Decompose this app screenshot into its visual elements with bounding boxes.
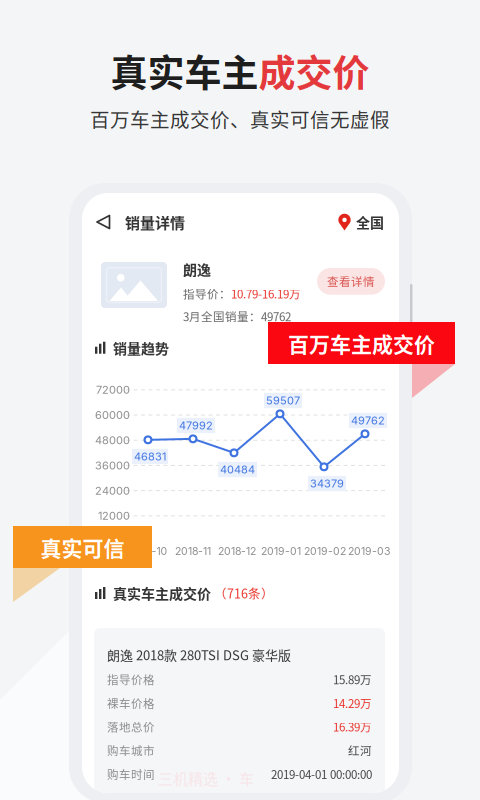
staticText: 24000 (95, 484, 130, 497)
staticText: 销量详情 (125, 211, 185, 233)
staticText: 72000 (96, 383, 130, 396)
staticText: 2018-10 (128, 545, 167, 557)
staticText: 成交价 (258, 44, 369, 98)
button[interactable]: 全国 (338, 212, 384, 232)
staticText: 2019-01 (261, 545, 301, 557)
staticText: 购车时间 (107, 765, 155, 782)
staticText: 全国 (356, 212, 384, 232)
staticText: 落地总价 (107, 718, 155, 735)
staticText: 10.79-16.19万 (231, 285, 301, 302)
staticText: 指导价： (183, 285, 231, 302)
staticText: 朗逸 (183, 259, 211, 279)
staticText: 2018-12 (218, 545, 256, 557)
staticText: 59507 (266, 394, 300, 407)
staticText: 三机精选 · 车 (158, 767, 254, 789)
staticText: 2019-04-01 00:00:00 (271, 765, 372, 782)
staticText: 46831 (134, 450, 166, 463)
staticText: （716条） (214, 584, 274, 602)
button[interactable]: 查看详情 (317, 268, 385, 295)
staticText: 真实车主 (110, 44, 258, 98)
staticText: 12000 (98, 509, 130, 522)
staticText: 2019-02 (304, 545, 346, 557)
staticText: 47992 (179, 419, 213, 432)
staticText: 真实可信 (40, 532, 124, 562)
staticText: 指导价格 (107, 671, 155, 688)
staticText: 14.29万 (333, 695, 372, 711)
staticText: 百万车主成交价 (288, 328, 435, 358)
staticText: 销量趋势 (113, 338, 169, 358)
staticText: 49762 (351, 414, 385, 427)
staticText: 36000 (95, 459, 130, 472)
staticText: 48000 (95, 434, 130, 447)
staticText: 2019-03 (348, 545, 390, 557)
button[interactable]: 返回 (94, 205, 125, 239)
staticText: 34379 (310, 477, 344, 490)
staticText: 15.89万 (333, 671, 372, 688)
staticText: 朗逸 2018款 280TSI DSG 豪华版 (107, 645, 291, 664)
staticText: 百万车主成交价、真实可信无虚假 (90, 105, 390, 133)
staticText: 购车城市 (107, 742, 155, 759)
staticText: 真实车主成交价 (113, 583, 211, 603)
staticText: 2018-11 (175, 545, 211, 557)
staticText: 查看详情 (327, 273, 375, 290)
staticText: 3月全国销量：49762 (183, 308, 291, 325)
staticText: 裸车价格 (107, 695, 155, 711)
staticText: 16.39万 (333, 718, 372, 735)
staticText: 40484 (220, 463, 255, 476)
staticText: 红河 (348, 742, 372, 759)
staticText: 60000 (95, 408, 130, 422)
